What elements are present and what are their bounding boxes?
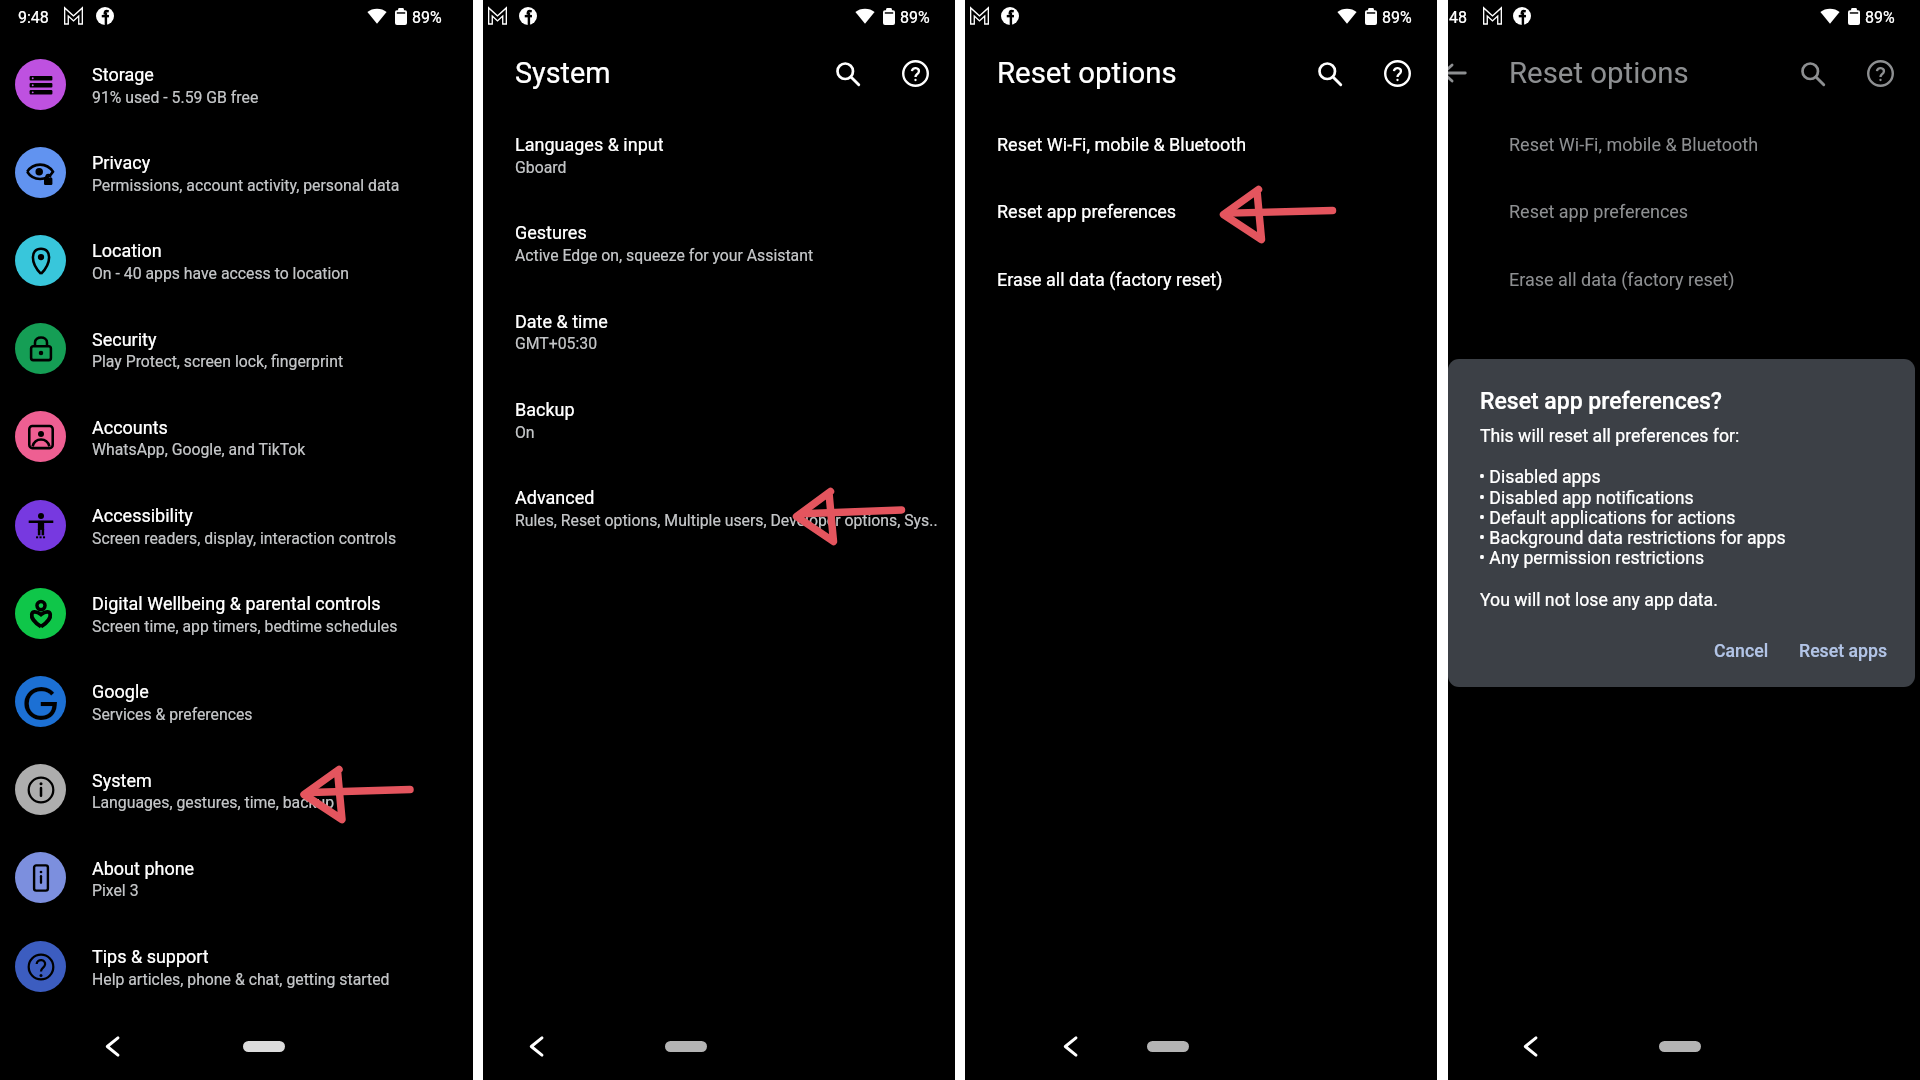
staticText: Reset app preferences	[1509, 201, 1689, 222]
staticText: Digital Wellbeing & parental controls	[92, 593, 381, 614]
staticText: GMT+05:30	[515, 334, 598, 353]
button[interactable]: Cancel	[1703, 633, 1779, 669]
button[interactable]: Help	[1375, 51, 1419, 95]
staticText: Rules, Reset options, Multiple users, De…	[515, 511, 938, 530]
button[interactable]: Search	[1307, 51, 1351, 95]
staticText: This will reset all preferences for:	[1480, 426, 1740, 447]
staticText: Screen readers, display, interaction con…	[92, 529, 397, 548]
button[interactable]	[0, 40, 473, 128]
staticText: System	[515, 56, 611, 90]
staticText: 89%	[1382, 8, 1412, 27]
staticText: Active Edge on, squeeze for your Assista…	[515, 246, 814, 265]
staticText: Reset app preferences	[997, 201, 1177, 222]
button[interactable]	[0, 746, 473, 834]
staticText: Screen time, app timers, bedtime schedul…	[92, 617, 398, 636]
staticText: Erase all data (factory reset)	[997, 269, 1223, 290]
button[interactable]: Reset apps	[1792, 633, 1894, 669]
button[interactable]: Search	[825, 51, 869, 95]
staticText: Reset options	[997, 56, 1177, 90]
staticText: Reset Wi-Fi, mobile & Bluetooth	[1509, 134, 1759, 155]
button[interactable]	[483, 111, 955, 199]
staticText: Reset Wi-Fi, mobile & Bluetooth	[997, 134, 1247, 155]
button[interactable]	[483, 288, 955, 376]
staticText: Advanced	[515, 487, 595, 508]
staticText: On - 40 apps have access to location	[92, 264, 350, 283]
button[interactable]	[0, 393, 473, 481]
staticText: Pixel 3	[92, 881, 139, 900]
staticText: 89%	[412, 8, 442, 27]
staticText: Cancel	[1714, 641, 1769, 662]
button[interactable]: Home	[243, 1041, 285, 1052]
button[interactable]	[483, 376, 955, 464]
staticText: Security	[92, 329, 157, 350]
button[interactable]: Back	[1512, 1028, 1548, 1064]
staticText: • Any permission restrictions	[1479, 548, 1705, 569]
button[interactable]	[965, 246, 1437, 312]
staticText: Privacy	[92, 152, 151, 173]
staticText: 9:48	[18, 8, 49, 27]
staticText: Play Protect, screen lock, fingerprint	[92, 352, 344, 371]
staticText: 89%	[900, 8, 930, 27]
staticText: Reset app preferences?	[1480, 388, 1723, 415]
staticText: Accounts	[92, 417, 168, 438]
button[interactable]	[0, 657, 473, 745]
staticText: 91% used - 5.59 GB free	[92, 88, 259, 107]
staticText: Help articles, phone & chat, getting sta…	[92, 970, 390, 989]
staticText: • Default applications for actions	[1479, 508, 1736, 529]
button[interactable]	[0, 305, 473, 393]
staticText: Storage	[92, 64, 154, 85]
button[interactable]	[0, 569, 473, 657]
button[interactable]	[0, 481, 473, 569]
staticText: 89%	[1865, 8, 1895, 27]
staticText: Date & time	[515, 311, 608, 332]
button[interactable]: Back	[94, 1028, 130, 1064]
button[interactable]: Back	[1052, 1028, 1088, 1064]
button[interactable]	[0, 834, 473, 922]
staticText: • Disabled app notifications	[1479, 488, 1694, 509]
staticText: Accessibility	[92, 505, 193, 526]
staticText: Reset options	[1509, 56, 1689, 90]
staticText: About phone	[92, 858, 195, 879]
button[interactable]	[965, 179, 1437, 245]
button[interactable]: Back	[518, 1028, 554, 1064]
button[interactable]: Help	[893, 51, 937, 95]
button[interactable]	[483, 464, 955, 552]
staticText: • Background data restrictions for apps	[1479, 528, 1786, 549]
button[interactable]: Home	[1659, 1041, 1701, 1052]
staticText: Google	[92, 681, 149, 702]
button[interactable]	[965, 112, 1437, 178]
button[interactable]	[0, 216, 473, 304]
staticText: System	[92, 770, 152, 791]
staticText: On	[515, 423, 535, 442]
staticText: Gestures	[515, 222, 587, 243]
staticText: Reset apps	[1799, 641, 1887, 662]
staticText: You will not lose any app data.	[1480, 590, 1718, 611]
staticText: Backup	[515, 399, 575, 420]
button[interactable]	[483, 199, 955, 287]
staticText: Location	[92, 240, 162, 261]
staticText: Languages, gestures, time, backup	[92, 793, 335, 812]
button[interactable]	[0, 922, 473, 1010]
staticText: • Disabled apps	[1479, 467, 1601, 488]
button[interactable]	[0, 128, 473, 216]
staticText: G	[22, 676, 60, 723]
button[interactable]: Home	[1147, 1041, 1189, 1052]
staticText: Erase all data (factory reset)	[1509, 269, 1735, 290]
staticText: Permissions, account activity, personal …	[92, 176, 400, 195]
staticText: WhatsApp, Google, and TikTok	[92, 440, 306, 459]
staticText: Gboard	[515, 158, 567, 177]
button[interactable]: Search	[1790, 51, 1834, 95]
button[interactable]: Back	[1434, 53, 1474, 93]
staticText: Services & preferences	[92, 705, 253, 724]
staticText: 48	[1449, 8, 1467, 27]
button[interactable]: Help	[1858, 51, 1902, 95]
staticText: Languages & input	[515, 134, 664, 155]
button[interactable]: Home	[665, 1041, 707, 1052]
staticText: Tips & support	[92, 946, 209, 967]
